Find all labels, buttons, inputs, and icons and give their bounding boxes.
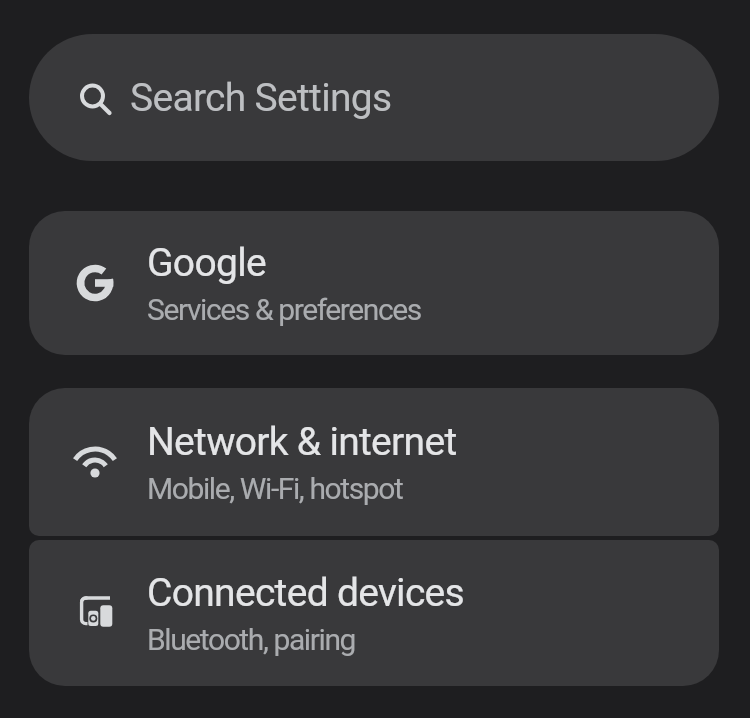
staticText: Search Settings	[130, 75, 392, 121]
staticText: Mobile, Wi-Fi, hotspot	[147, 471, 403, 506]
staticText: Google	[147, 240, 266, 286]
staticText: Connected devices	[147, 570, 465, 616]
button[interactable]: Google	[29, 211, 719, 355]
staticText: Network & internet	[147, 419, 457, 465]
staticText: Bluetooth, pairing	[147, 622, 355, 657]
button[interactable]: Connected devices	[29, 540, 719, 686]
button[interactable]: Network & internet	[29, 388, 719, 536]
staticText: Services & preferences	[147, 292, 421, 327]
button[interactable]: Search Settings	[29, 34, 719, 161]
